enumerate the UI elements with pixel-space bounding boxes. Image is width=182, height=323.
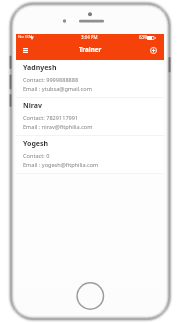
button[interactable]: Open navigation menu — [20, 44, 31, 56]
staticText: Email : ytubsa@gmail.com — [23, 85, 92, 93]
staticText: Contact: 9999888888 — [23, 76, 79, 84]
staticText: No SIM — [18, 34, 33, 40]
staticText: Contact: 7829117991 — [23, 114, 79, 122]
staticText: 3:04 PM — [81, 34, 98, 40]
staticText: Email : yogesh@fitphilia.com — [23, 161, 99, 169]
staticText: Nirav — [23, 101, 42, 111]
button[interactable]: Yogesh — [16, 136, 164, 174]
button[interactable]: Add trainer — [148, 45, 159, 56]
button[interactable]: Yadnyesh — [16, 60, 164, 98]
staticText: Yadnyesh — [23, 63, 57, 73]
staticText: Yogesh — [23, 139, 49, 149]
staticText: Email : nirav@fitphilia.com — [23, 123, 93, 131]
staticText: Contact: 0 — [23, 152, 50, 160]
staticText: 63% — [139, 34, 148, 40]
button[interactable]: Nirav — [16, 98, 164, 136]
staticText: Trainer — [79, 45, 102, 54]
